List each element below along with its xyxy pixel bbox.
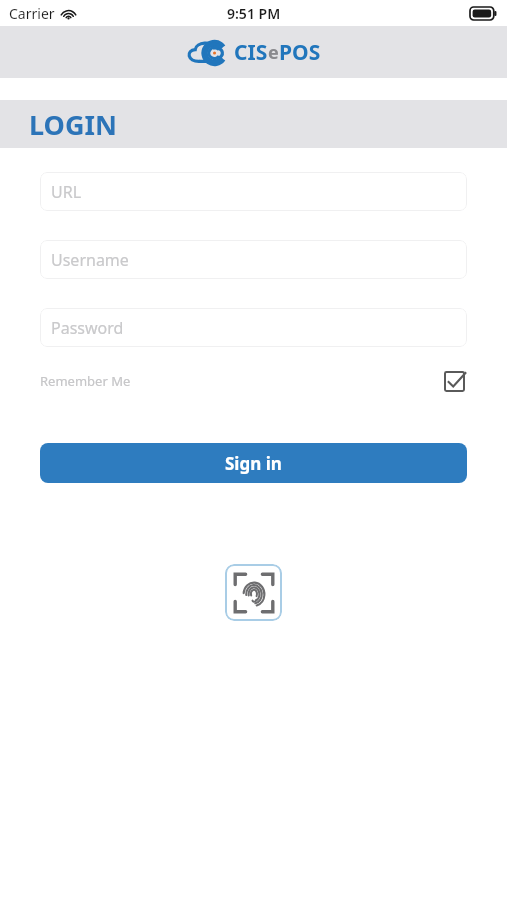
staticText: CIS: [234, 38, 268, 67]
staticText: POS: [279, 38, 321, 67]
button[interactable]: Sign in: [40, 443, 467, 483]
staticText: 9:51 PM: [227, 4, 281, 23]
button[interactable]: Password: [40, 308, 467, 347]
staticText: Username: [51, 249, 129, 271]
button[interactable]: Username: [40, 240, 467, 279]
staticText: Carrier: [9, 4, 55, 23]
button[interactable]: Sign in with fingerprint: [225, 564, 282, 621]
staticText: Password: [51, 317, 124, 339]
staticText: URL: [51, 181, 82, 203]
staticText: e: [268, 40, 279, 65]
button[interactable]: Remember Me checkbox: [441, 368, 467, 394]
button[interactable]: URL: [40, 172, 467, 211]
staticText: LOGIN: [29, 106, 117, 143]
staticText: Remember Me: [40, 372, 131, 390]
staticText: Sign in: [225, 452, 282, 475]
